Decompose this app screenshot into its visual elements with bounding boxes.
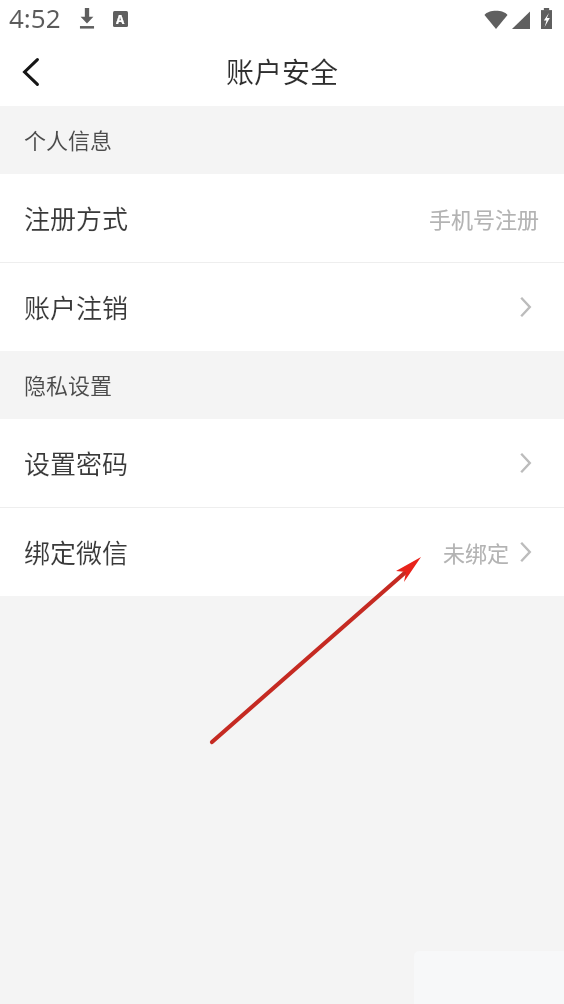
staticText: 账户注销 [24,288,129,326]
button[interactable]: 绑定微信 [0,508,564,596]
button[interactable]: 注册方式 [0,174,564,262]
button[interactable]: 设置密码 [0,419,564,507]
staticText: 注册方式 [24,199,129,237]
staticText: 未绑定 [443,536,510,568]
staticText: A [116,11,125,24]
staticText: 账户安全 [226,51,339,92]
staticText: 设置密码 [24,444,129,482]
button[interactable]: Back [0,41,62,103]
staticText: 绑定微信 [24,533,129,571]
staticText: 4:52 [9,0,61,35]
button[interactable]: 账户注销 [0,263,564,351]
staticText: 隐私设置 [24,368,113,400]
staticText: 个人信息 [24,123,113,155]
staticText: 手机号注册 [429,202,540,234]
